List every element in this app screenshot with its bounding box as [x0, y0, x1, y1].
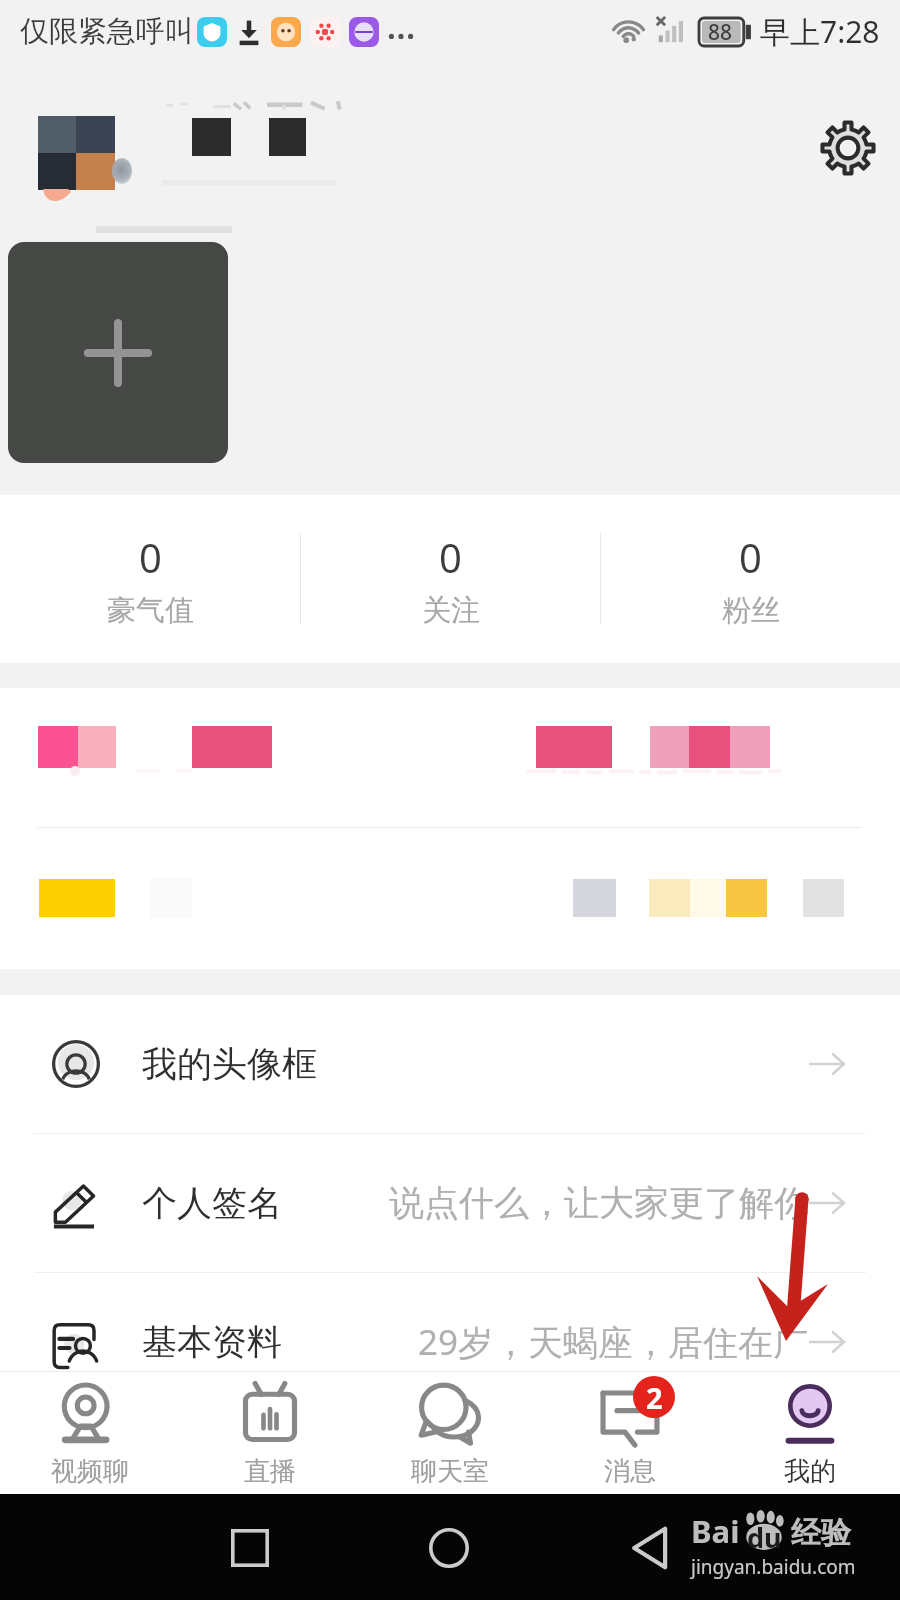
- button[interactable]: 个人签名: [0, 1134, 900, 1272]
- staticText: 经验: [791, 1514, 851, 1552]
- button[interactable]: Back: [606, 1504, 694, 1592]
- staticText: 关注: [422, 592, 480, 629]
- button[interactable]: 直播: [180, 1371, 360, 1494]
- staticText: 视频聊: [51, 1455, 129, 1488]
- button[interactable]: 我的头像框: [0, 995, 900, 1133]
- staticText: 个人签名: [142, 1181, 282, 1225]
- staticText: 早上7:28: [760, 11, 880, 52]
- staticText: Bai: [691, 1510, 740, 1552]
- staticText: 我的: [784, 1455, 836, 1488]
- staticText: 2: [646, 1378, 663, 1417]
- button[interactable]: 0: [601, 495, 900, 663]
- staticText: 说点什么，让大家更了解你: [389, 1181, 809, 1225]
- staticText: du: [747, 1519, 782, 1556]
- staticText: 我的头像框: [142, 1042, 317, 1086]
- button[interactable]: 我的: [720, 1371, 900, 1494]
- staticText: 29岁，天蝎座，居住在广: [418, 1318, 809, 1366]
- button[interactable]: 基本资料: [0, 1273, 900, 1371]
- button[interactable]: 0: [301, 495, 600, 663]
- staticText: 消息: [604, 1455, 656, 1488]
- staticText: 基本资料: [142, 1320, 282, 1364]
- button[interactable]: Add photo: [8, 242, 228, 463]
- button[interactable]: Home: [405, 1504, 493, 1592]
- staticText: 88: [708, 18, 733, 47]
- staticText: 0: [739, 530, 762, 584]
- button[interactable]: 聊天室: [360, 1371, 540, 1494]
- staticText: 仅限紧急呼叫: [20, 13, 194, 50]
- button[interactable]: Profile: [24, 105, 444, 205]
- button[interactable]: 视频聊: [0, 1371, 180, 1494]
- button[interactable]: Settings: [802, 102, 894, 194]
- button[interactable]: Recent apps: [206, 1504, 294, 1592]
- staticText: 直播: [244, 1455, 296, 1488]
- staticText: 0: [439, 530, 462, 584]
- staticText: 0: [139, 530, 162, 584]
- button[interactable]: 2: [540, 1371, 720, 1494]
- staticText: 粉丝: [722, 592, 780, 629]
- button[interactable]: 0: [0, 495, 300, 663]
- staticText: jingyan.baidu.com: [691, 1554, 856, 1580]
- staticText: 聊天室: [411, 1455, 489, 1488]
- staticText: 豪气值: [107, 592, 194, 629]
